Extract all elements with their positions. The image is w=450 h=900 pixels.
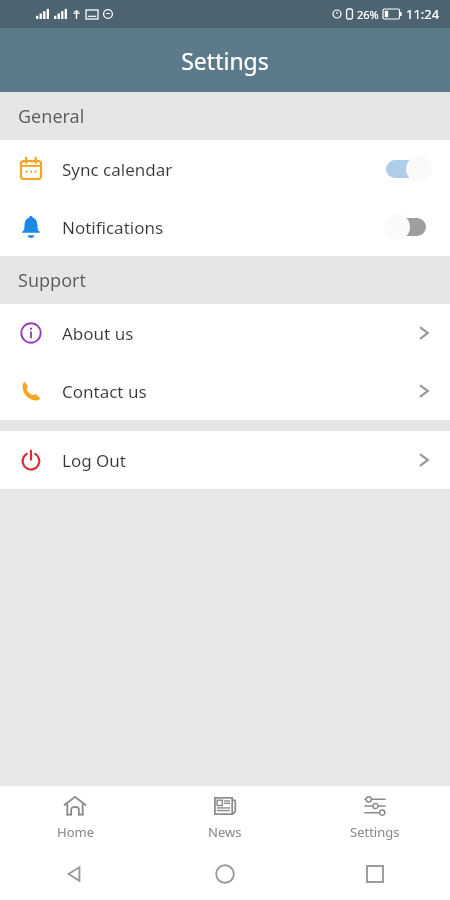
button[interactable]: Recents — [300, 848, 450, 900]
button[interactable]: News — [150, 786, 300, 848]
button[interactable]: Notifications — [0, 198, 450, 256]
button[interactable]: Off — [384, 214, 432, 240]
staticText: Settings — [181, 45, 269, 76]
button[interactable]: Home — [150, 848, 300, 900]
button[interactable]: Settings — [300, 786, 450, 848]
staticText: Contact us — [62, 380, 147, 403]
button[interactable]: On — [384, 156, 432, 182]
button[interactable]: Contact us — [0, 362, 450, 420]
staticText: About us — [62, 322, 134, 345]
staticText: Support — [18, 268, 86, 293]
button[interactable]: Home — [0, 786, 150, 848]
staticText: Notifications — [62, 216, 164, 239]
staticText: General — [18, 104, 85, 129]
staticText: Log Out — [62, 449, 126, 472]
staticText: Sync calendar — [62, 158, 173, 181]
staticText: Settings — [350, 823, 400, 841]
button[interactable]: About us — [0, 304, 450, 362]
staticText: Home — [57, 823, 94, 841]
staticText: 26% — [357, 7, 379, 22]
button[interactable]: Back — [0, 848, 150, 900]
staticText: 11:24 — [406, 5, 440, 23]
staticText: News — [208, 823, 242, 841]
button[interactable]: Sync calendar — [0, 140, 450, 198]
button[interactable]: Log Out — [0, 431, 450, 489]
